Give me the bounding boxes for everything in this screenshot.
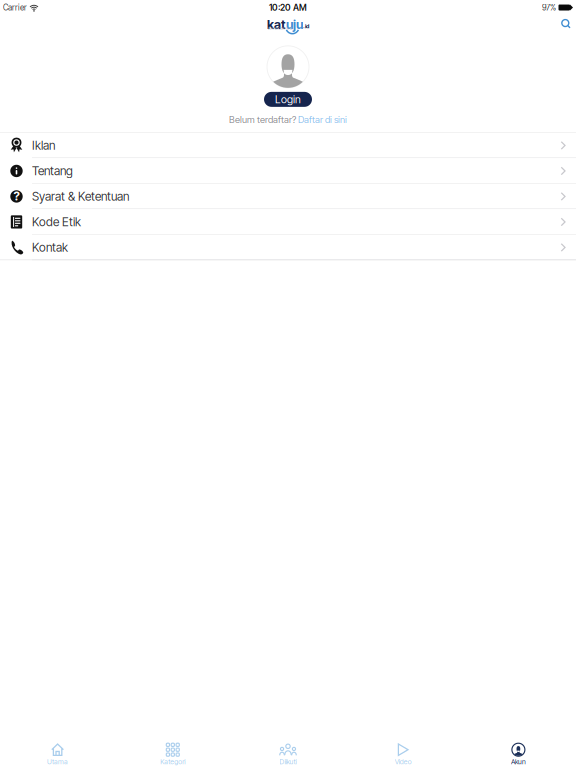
button[interactable]: ? [0,184,576,209]
staticText: Kontak [32,240,68,255]
button[interactable]: Akun [461,738,576,768]
button[interactable]: Kategori [115,738,230,768]
button[interactable]: Iklan [0,133,576,158]
staticText: Iklan [32,138,55,153]
staticText: Video [395,758,412,766]
staticText: Belum terdaftar? [229,114,296,125]
staticText: Diikuti [279,758,296,766]
button[interactable]: Search [556,17,576,31]
staticText: Carrier [3,3,27,12]
staticText: uju [286,17,303,32]
button[interactable]: Kode Etik [0,209,576,235]
staticText: Utama [47,758,68,766]
staticText: ? [13,189,19,203]
button[interactable]: Video [346,738,461,768]
button[interactable]: Kontak [0,235,576,260]
button[interactable]: Diikuti [230,738,346,768]
button[interactable]: Utama [0,738,115,768]
staticText: Akun [511,758,526,766]
staticText: BERITA DARI KITA [267,27,292,30]
staticText: 97% [542,3,556,12]
staticText: Kode Etik [32,215,81,229]
staticText: Tentang [32,164,73,178]
staticText: 10:20 AM [269,2,307,13]
button[interactable]: Daftar di sini [296,114,347,125]
staticText: Kategori [160,758,185,766]
staticText: Daftar di sini [296,114,347,125]
staticText: Syarat & Ketentuan [32,189,129,204]
staticText: .id [303,23,309,29]
button[interactable]: Login [264,92,312,107]
staticText: Login [275,93,301,106]
button[interactable]: Tentang [0,158,576,184]
staticText: kat [267,17,286,32]
